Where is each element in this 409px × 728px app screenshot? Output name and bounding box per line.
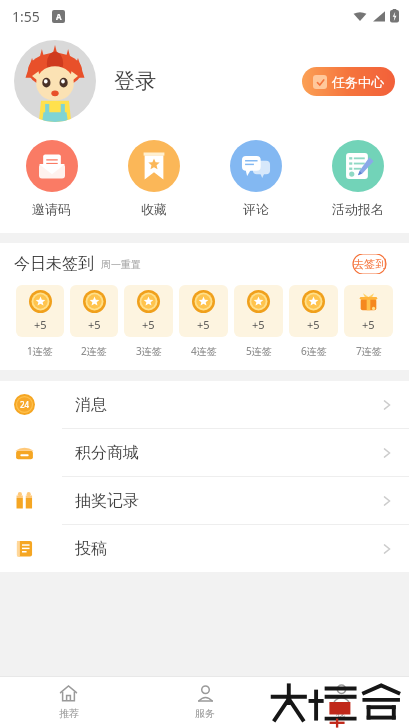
button[interactable]: +5	[16, 285, 64, 358]
button[interactable]: 抽奖记录	[0, 477, 409, 524]
staticText: +5	[34, 317, 47, 332]
staticText: 2连签	[81, 344, 107, 358]
staticText: 1:55	[12, 7, 40, 26]
staticText: +5	[362, 317, 375, 332]
button[interactable]: +5	[124, 285, 173, 358]
button[interactable]: Avatar	[14, 40, 96, 122]
staticText: 评论	[243, 201, 269, 217]
button[interactable]: 任务中心	[302, 67, 395, 96]
button[interactable]: +5	[70, 285, 118, 358]
staticText: 7连签	[356, 344, 382, 358]
button[interactable]: 积分商城	[0, 429, 409, 476]
staticText: 周一重置	[101, 258, 141, 271]
staticText: 24	[20, 399, 30, 410]
staticText: 消息	[75, 395, 107, 415]
staticText: A	[56, 11, 62, 22]
staticText: +5	[307, 317, 320, 332]
staticText: 活动报名	[332, 201, 384, 217]
staticText: 6连签	[301, 344, 327, 358]
staticText: 投稿	[75, 539, 107, 559]
staticText: 3连签	[136, 344, 162, 358]
button[interactable]: +5	[179, 285, 228, 358]
staticText: 收藏	[141, 201, 167, 217]
button[interactable]: 24	[0, 381, 409, 428]
staticText: 今日未签到	[14, 254, 94, 274]
button[interactable]: 服务	[137, 676, 273, 728]
staticText: +5	[197, 317, 210, 332]
button[interactable]: +5	[289, 285, 338, 358]
staticText: 5连签	[246, 344, 272, 358]
staticText: +5	[88, 317, 101, 332]
button[interactable]: +5	[234, 285, 283, 358]
button[interactable]: 推荐	[0, 676, 137, 728]
staticText: 推荐	[59, 707, 79, 720]
staticText: 积分商城	[75, 443, 139, 463]
button[interactable]: 投稿	[0, 525, 409, 572]
button[interactable]: +5	[344, 285, 393, 358]
button[interactable]: 去签到	[344, 254, 395, 274]
staticText: 邀请码	[32, 201, 71, 217]
button[interactable]: 评论	[205, 136, 307, 221]
staticText: +5	[252, 317, 265, 332]
button[interactable]: 登录	[114, 68, 156, 94]
staticText: 4连签	[191, 344, 217, 358]
staticText: 去签到	[353, 257, 386, 271]
button[interactable]: 我	[273, 676, 409, 728]
staticText: +5	[142, 317, 155, 332]
staticText: 任务中心	[332, 74, 384, 90]
button[interactable]: 活动报名	[307, 136, 409, 221]
staticText: 服务	[195, 707, 215, 720]
staticText: 抽奖记录	[75, 491, 139, 511]
staticText: 我	[336, 707, 346, 720]
button[interactable]: 邀请码	[0, 136, 103, 221]
button[interactable]: 收藏	[103, 136, 205, 221]
staticText: 1连签	[27, 344, 53, 358]
